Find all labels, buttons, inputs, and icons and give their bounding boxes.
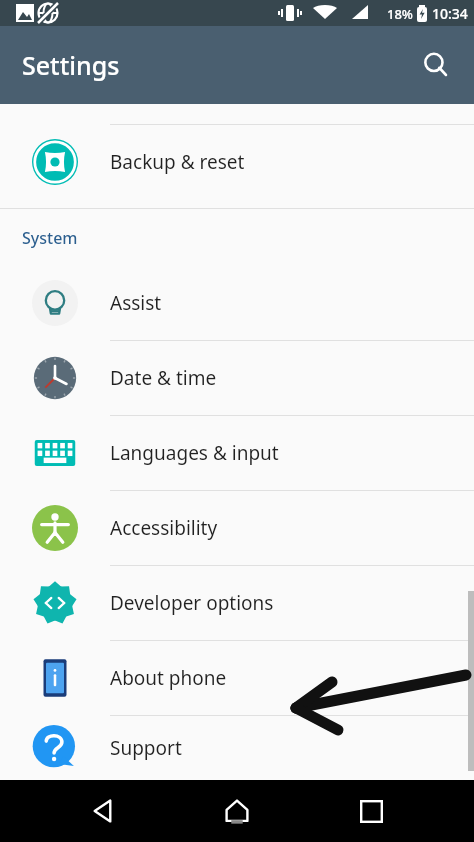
button[interactable]: Backup & reset bbox=[0, 125, 474, 199]
staticText: Settings bbox=[22, 48, 120, 82]
button[interactable]: Developer options bbox=[0, 566, 474, 640]
staticText: System bbox=[22, 227, 78, 249]
staticText: Languages & input bbox=[110, 440, 279, 466]
button[interactable]: Home bbox=[206, 780, 268, 842]
staticText: Assist bbox=[110, 290, 162, 316]
button[interactable]: Assist bbox=[0, 266, 474, 340]
button[interactable]: Date & time bbox=[0, 341, 474, 415]
button[interactable]: About phone bbox=[0, 641, 474, 715]
button[interactable]: Accessibility bbox=[0, 491, 474, 565]
button[interactable]: Back bbox=[72, 780, 134, 842]
button[interactable]: Support bbox=[0, 716, 474, 780]
button[interactable]: Languages & input bbox=[0, 416, 474, 490]
staticText: Accessibility bbox=[110, 515, 218, 541]
button[interactable]: Search bbox=[412, 41, 460, 89]
staticText: 10:34 bbox=[432, 4, 468, 23]
staticText: Date & time bbox=[110, 365, 217, 391]
button[interactable]: Recent apps bbox=[340, 780, 402, 842]
staticText: Developer options bbox=[110, 590, 274, 616]
staticText: Backup & reset bbox=[110, 149, 245, 175]
staticText: About phone bbox=[110, 665, 227, 691]
staticText: 18% bbox=[387, 5, 413, 23]
staticText: Support bbox=[110, 735, 182, 761]
